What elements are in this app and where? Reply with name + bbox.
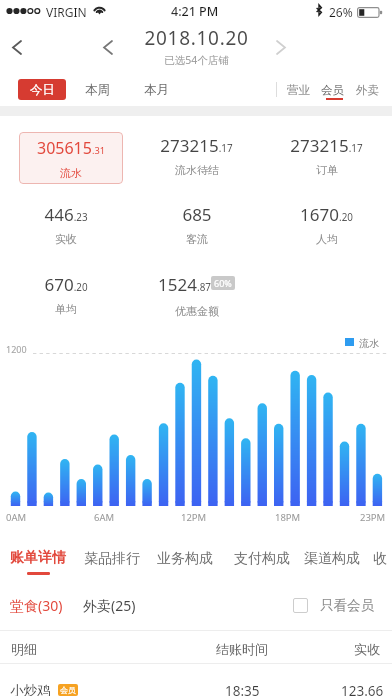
button[interactable]: 营业 (286, 82, 310, 98)
staticText: 本周 (85, 82, 110, 98)
button[interactable]: 本月 (137, 81, 175, 99)
staticText: 人均 (316, 232, 338, 246)
staticText: 6AM (94, 511, 115, 524)
staticText: 明细 (11, 641, 37, 657)
staticText: 结账时间 (216, 641, 268, 657)
staticText: 支付构成 (234, 550, 290, 568)
staticText: VIRGIN (46, 4, 87, 20)
button[interactable]: 外卖 (355, 82, 379, 98)
button[interactable]: 支付构成 (233, 545, 291, 573)
staticText: 只看会员 (320, 597, 374, 614)
button[interactable]: 账单详情 (6, 545, 70, 577)
staticText: 小炒鸡 (10, 682, 51, 696)
staticText: 会员 (60, 685, 76, 695)
staticText: 已选54个店铺 (164, 53, 229, 67)
button[interactable]: 渠道构成 (303, 545, 361, 573)
staticText: 4:21 PM (171, 3, 219, 20)
button[interactable]: 今日 (18, 79, 66, 100)
button[interactable]: 业务构成 (156, 545, 214, 573)
staticText: 收 (373, 550, 387, 568)
staticText: 客流 (186, 232, 208, 246)
button[interactable]: 外卖(25) (83, 595, 139, 615)
button[interactable]: 1524.87 (131, 273, 262, 318)
staticText: 本月 (144, 82, 169, 98)
button[interactable]: 本周 (78, 81, 116, 99)
staticText: 堂食(30) (10, 596, 63, 615)
staticText: 会员 (321, 83, 344, 97)
staticText: 流水待结 (175, 163, 219, 177)
staticText: 123.66 (341, 682, 384, 696)
button[interactable]: Next date (268, 31, 294, 63)
button[interactable]: 堂食(30) (10, 595, 66, 615)
button[interactable]: 273215.17 (261, 134, 392, 177)
staticText: 外卖(25) (83, 596, 136, 615)
button[interactable]: 670.20 (0, 273, 131, 316)
staticText: 菜品排行 (84, 550, 140, 568)
staticText: 685 (182, 203, 212, 226)
staticText: 优惠金额 (175, 304, 219, 318)
button[interactable]: 只看会员 (293, 595, 374, 615)
button[interactable]: 小炒鸡 (0, 664, 392, 696)
staticText: 实收 (55, 232, 77, 246)
staticText: 流水 (60, 166, 82, 180)
button[interactable]: 菜品排行 (83, 545, 141, 573)
staticText: 273215.17 (290, 134, 363, 157)
staticText: 单均 (55, 302, 77, 316)
button[interactable]: 273215.17 (131, 134, 262, 177)
button[interactable]: 685 (131, 203, 262, 246)
staticText: 60% (214, 277, 232, 289)
staticText: 273215.17 (160, 134, 233, 157)
staticText: 实收 (354, 641, 380, 657)
staticText: 12PM (181, 511, 207, 524)
button[interactable]: 收 (373, 549, 391, 569)
staticText: 账单详情 (10, 549, 66, 567)
staticText: 1524.87 (158, 273, 211, 296)
button[interactable]: 446.23 (0, 203, 131, 246)
staticText: 670.20 (44, 273, 88, 296)
staticText: 23PM (360, 511, 386, 524)
staticText: 营业 (287, 83, 310, 97)
staticText: 流水 (359, 337, 379, 350)
staticText: 1670.20 (300, 203, 353, 226)
staticText: 2018.10.20 (144, 25, 249, 51)
staticText: 1200 (6, 343, 27, 355)
staticText: 渠道构成 (304, 550, 360, 568)
staticText: 305615.31 (37, 137, 105, 159)
button[interactable]: 1670.20 (261, 203, 392, 246)
staticText: 0AM (6, 511, 27, 524)
button[interactable]: 会员 (320, 82, 344, 98)
button[interactable]: 2018.10.20 (126, 25, 266, 67)
button[interactable]: Back (2, 30, 32, 64)
button[interactable]: 305615.31 (19, 132, 123, 184)
staticText: 26% (329, 4, 353, 20)
staticText: 446.23 (44, 203, 88, 226)
button[interactable]: Previous date (95, 31, 121, 63)
staticText: 18PM (275, 511, 301, 524)
staticText: 订单 (316, 163, 338, 177)
staticText: 今日 (30, 82, 55, 98)
staticText: 18:35 (225, 682, 260, 696)
staticText: 外卖 (356, 83, 379, 97)
staticText: 业务构成 (157, 550, 213, 568)
